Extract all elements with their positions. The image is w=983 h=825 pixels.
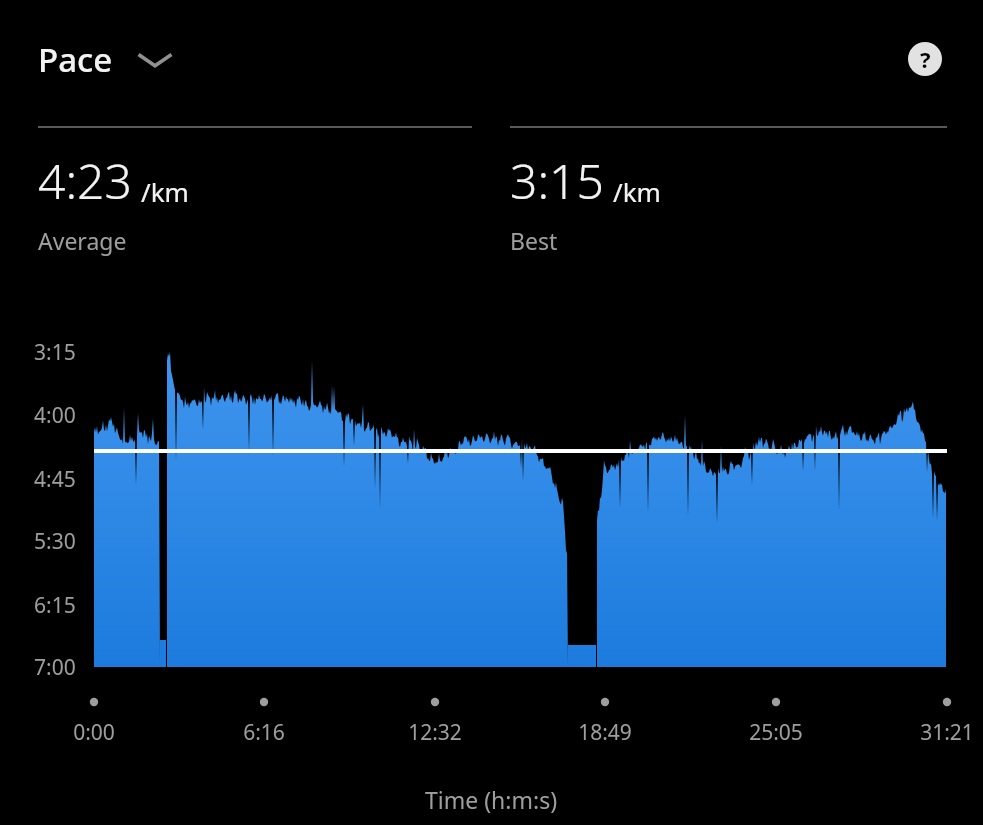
staticText: 3:15 [34,338,76,367]
staticText: 0:00 [34,718,154,747]
staticText: 4:23 [38,148,132,213]
staticText: 7:00 [34,653,76,682]
staticText: 3:15 [510,148,604,213]
button[interactable]: 3:15 [472,118,983,256]
staticText: /km [141,174,189,209]
staticText: Time (h:m:s) [425,784,558,815]
staticText: 18:49 [545,718,665,747]
staticText: 5:30 [34,527,76,556]
staticText: /km [613,174,661,209]
staticText: ? [920,44,931,74]
button[interactable]: Pace [38,37,172,82]
staticText: 31:21 [887,718,983,747]
staticText: 25:05 [716,718,836,747]
staticText: 4:45 [34,465,76,494]
staticText: 6:16 [204,718,324,747]
staticText: Best [510,225,558,256]
staticText: 6:15 [34,591,76,620]
button[interactable]: 4:23 [0,118,472,256]
staticText: Average [38,225,127,256]
staticText: Pace [38,37,113,82]
staticText: 4:00 [34,401,76,430]
staticText: 12:32 [375,718,495,747]
button[interactable]: Help [908,42,942,76]
